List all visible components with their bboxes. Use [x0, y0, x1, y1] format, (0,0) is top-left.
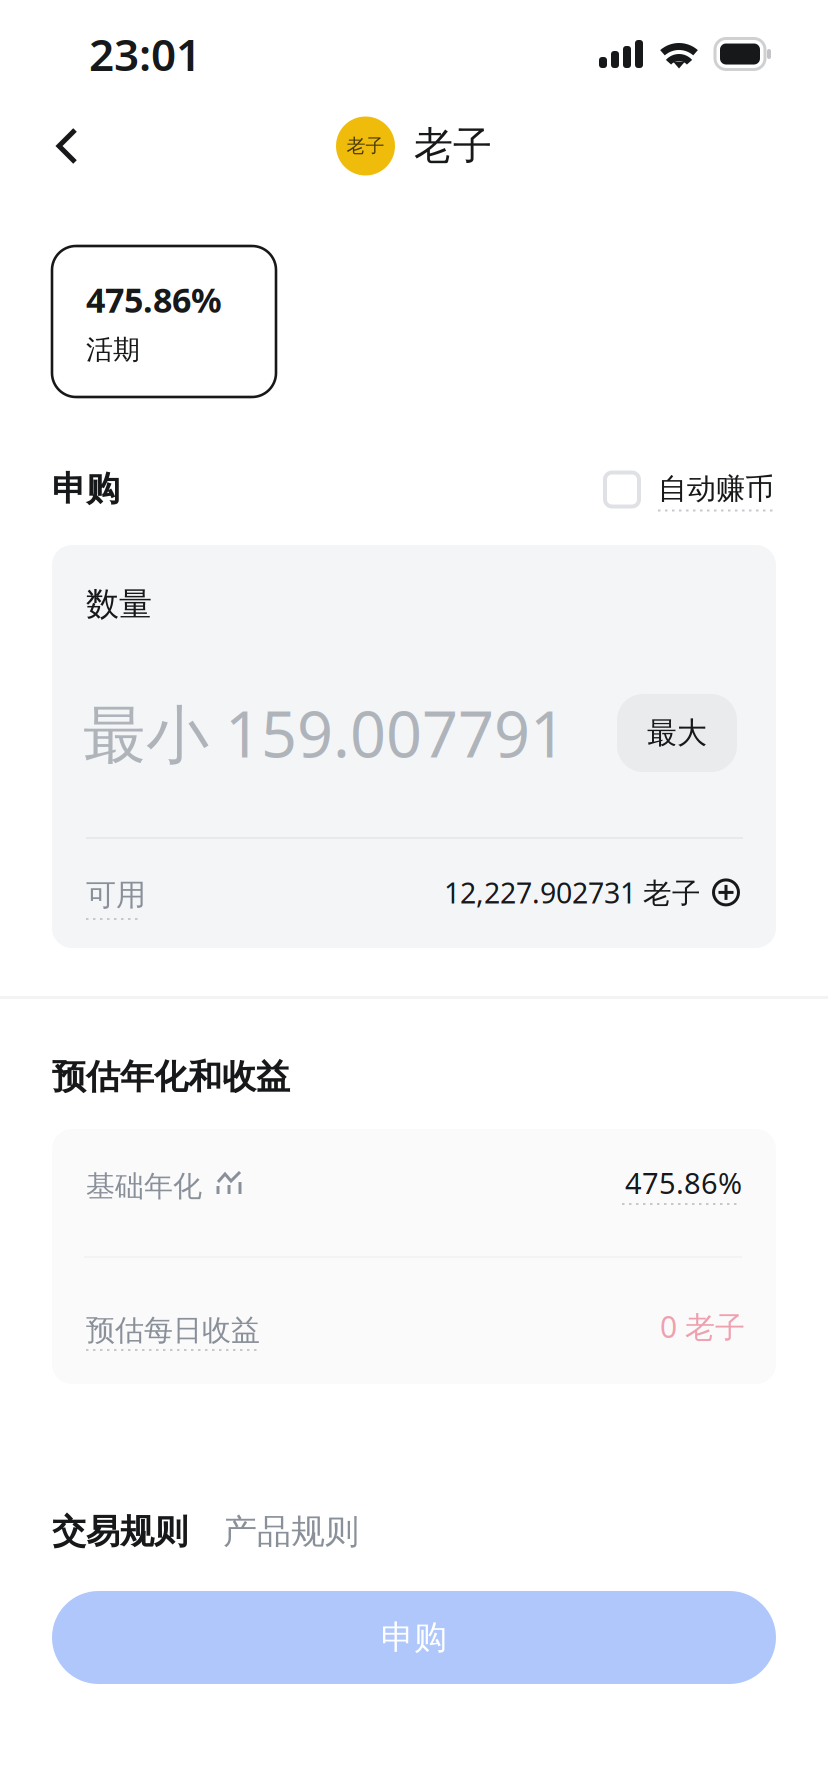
button[interactable]: 475.86% — [52, 246, 276, 397]
staticText: 申购 — [52, 468, 120, 510]
staticText: 最大 — [647, 714, 707, 752]
staticText: 老子 — [414, 121, 492, 170]
staticText: 预估每日收益 — [86, 1312, 260, 1348]
staticText: 基础年化 — [86, 1168, 202, 1204]
staticText: 老子 — [346, 134, 384, 158]
staticText: 数量 — [86, 583, 152, 625]
staticText: 自动赚币 — [658, 470, 774, 507]
staticText: 23:01 — [89, 24, 201, 84]
staticText: 申购 — [381, 1617, 447, 1658]
button[interactable]: Back — [28, 108, 106, 184]
button[interactable]: 自动赚币 — [605, 466, 776, 511]
staticText: 预估年化和收益 — [52, 1056, 290, 1098]
staticText: 475.86% — [86, 276, 222, 323]
staticText: 12,227.902731 老子 — [444, 873, 701, 912]
button[interactable]: 最大 — [617, 694, 737, 772]
staticText: 475.86% — [625, 1163, 742, 1202]
staticText: 产品规则 — [223, 1510, 359, 1553]
staticText: 0 老子 — [660, 1306, 745, 1347]
button[interactable]: 产品规则 — [223, 1510, 359, 1553]
staticText: 交易规则 — [52, 1510, 188, 1553]
button[interactable]: 交易规则 — [52, 1510, 188, 1553]
staticText: 可用 — [86, 876, 146, 914]
staticText: 活期 — [86, 333, 140, 367]
button[interactable]: 申购 — [52, 1591, 776, 1684]
staticText: 最小 159.007791 — [83, 690, 566, 776]
